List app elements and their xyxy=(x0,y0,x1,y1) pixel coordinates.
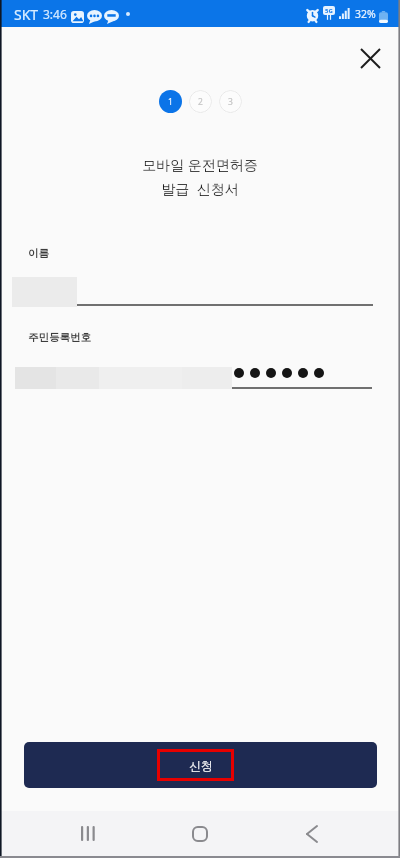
button[interactable]: 2 xyxy=(189,90,212,113)
button[interactable]: 신청 xyxy=(24,742,377,788)
staticText: 신청 xyxy=(189,758,213,773)
staticText: 5G xyxy=(325,7,333,15)
staticText: 이름 xyxy=(28,247,49,260)
button[interactable]: Close xyxy=(348,36,392,80)
staticText: 1 xyxy=(168,96,173,108)
staticText: 3 xyxy=(228,96,233,108)
staticText: 2 xyxy=(198,96,203,108)
staticText: 3:46 xyxy=(43,6,67,22)
staticText: 주민등록번호 xyxy=(28,331,91,344)
button[interactable]: Back xyxy=(288,810,336,857)
staticText: 발급 신청서 xyxy=(0,179,400,198)
button[interactable]: Home xyxy=(176,810,224,857)
button[interactable]: 3 xyxy=(219,90,242,113)
button[interactable]: Recents xyxy=(64,810,112,857)
staticText: 32% xyxy=(355,7,376,21)
staticText: 모바일 운전면허증 xyxy=(0,155,400,174)
staticText: SKT xyxy=(14,5,39,24)
button[interactable]: 1 xyxy=(159,90,182,113)
